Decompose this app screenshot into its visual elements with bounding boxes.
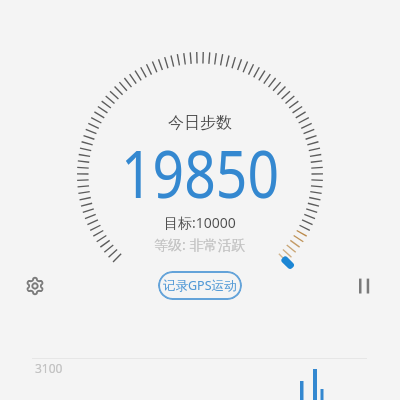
staticText: 3100 (35, 360, 63, 376)
button[interactable]: 记录GPS运动 (158, 271, 242, 300)
staticText: 记录GPS运动 (163, 277, 237, 294)
staticText: 等级: 非常活跃 (154, 235, 246, 254)
button[interactable]: Step history (0, 352, 400, 400)
staticText: 今日步数 (168, 113, 232, 133)
staticText: 目标:10000 (164, 213, 236, 232)
button[interactable]: Pause (347, 269, 381, 303)
staticText: 19850 (121, 129, 279, 218)
button[interactable]: Settings (18, 269, 52, 303)
